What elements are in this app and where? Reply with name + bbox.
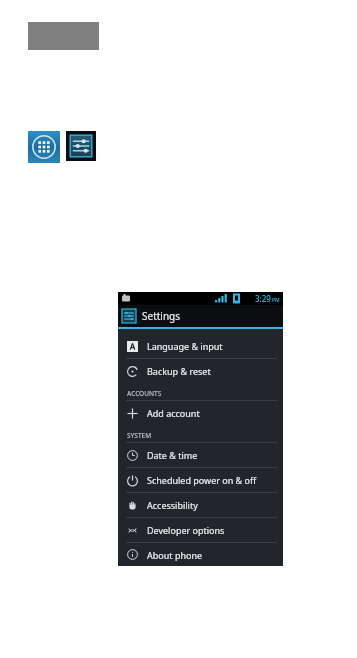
button[interactable]: Accessibility bbox=[118, 493, 283, 517]
staticText: SYSTEM bbox=[127, 431, 152, 440]
staticText: 3:29 bbox=[255, 293, 271, 304]
button[interactable]: All apps bbox=[28, 131, 60, 163]
button[interactable]: Backup & reset bbox=[118, 359, 283, 383]
button[interactable]: Developer options bbox=[118, 518, 283, 542]
staticText: Scheduled power on & off bbox=[147, 474, 257, 486]
staticText: PM bbox=[272, 297, 280, 304]
staticText: Developer options bbox=[147, 524, 225, 536]
staticText: Language & input bbox=[147, 340, 223, 352]
button[interactable]: Add account bbox=[118, 401, 283, 425]
staticText: Accessibility bbox=[147, 499, 198, 511]
staticText: ACCOUNTS bbox=[127, 389, 162, 398]
button[interactable]: Settings app bbox=[66, 131, 96, 161]
button[interactable]: Date & time bbox=[118, 443, 283, 467]
button[interactable]: Scheduled power on & off bbox=[118, 468, 283, 492]
staticText: Settings bbox=[142, 309, 181, 323]
button[interactable]: Language & input bbox=[118, 334, 283, 358]
staticText: Date & time bbox=[147, 449, 198, 461]
staticText: Backup & reset bbox=[147, 365, 211, 377]
button[interactable]: Settings bbox=[118, 305, 283, 327]
button[interactable]: About phone bbox=[118, 543, 283, 566]
staticText: About phone bbox=[147, 549, 203, 561]
staticText: Add account bbox=[147, 407, 200, 419]
